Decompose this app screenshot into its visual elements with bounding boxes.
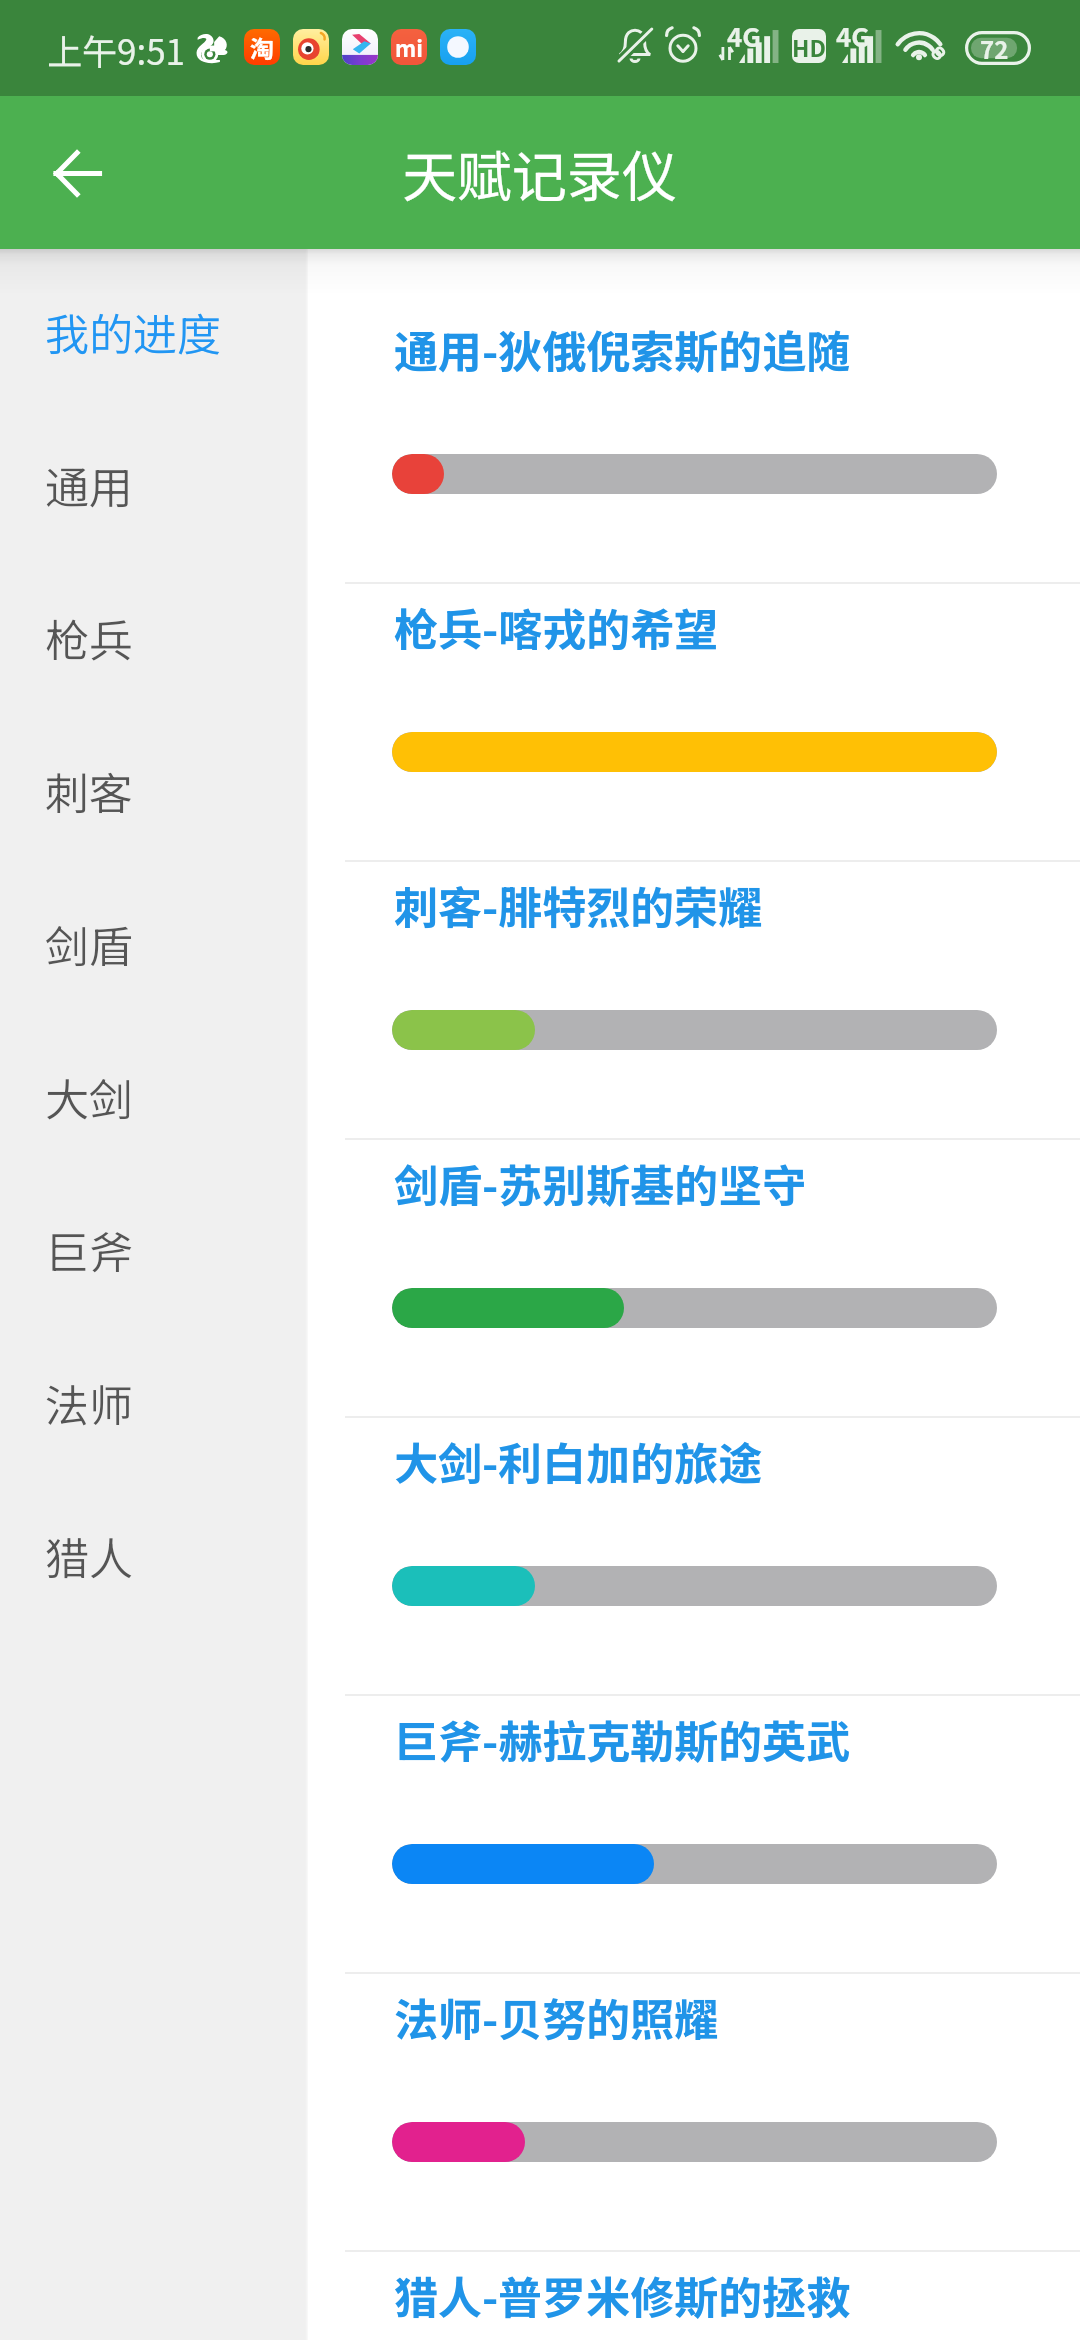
button[interactable]: 猎人: [0, 1479, 308, 1632]
staticText: 巨斧: [45, 1218, 133, 1282]
staticText: 枪兵: [45, 606, 133, 670]
staticText: 刺客-腓特烈的荣耀: [394, 873, 763, 937]
button[interactable]: 巨斧-赫拉克勒斯的英武: [308, 1694, 1080, 1972]
staticText: 法师: [45, 1371, 133, 1435]
button[interactable]: 通用-狄俄倪索斯的追随: [308, 306, 1080, 582]
staticText: 上午9:51: [47, 24, 186, 75]
staticText: 猎人: [45, 1524, 133, 1588]
button[interactable]: 剑盾: [0, 867, 308, 1020]
staticText: 刺客: [45, 759, 133, 823]
button[interactable]: 大剑: [0, 1020, 308, 1173]
staticText: 通用-狄俄倪索斯的追随: [394, 317, 851, 381]
staticText: 4G: [836, 17, 870, 55]
staticText: 大剑: [45, 1065, 133, 1129]
staticText: 枪兵-喀戎的希望: [394, 595, 719, 659]
staticText: 通用: [45, 453, 133, 517]
staticText: 法师-贝努的照耀: [394, 1985, 719, 2049]
staticText: 我的进度: [45, 300, 221, 364]
staticText: 淘: [250, 30, 274, 65]
button[interactable]: 我的进度: [0, 255, 308, 408]
staticText: 剑盾-苏别斯基的坚守: [394, 1151, 807, 1215]
button[interactable]: 法师: [0, 1326, 308, 1479]
staticText: 天赋记录仪: [402, 133, 678, 213]
button[interactable]: 剑盾-苏别斯基的坚守: [308, 1138, 1080, 1416]
staticText: 巨斧-赫拉克勒斯的英武: [394, 1707, 851, 1771]
staticText: 72: [980, 31, 1009, 65]
staticText: HD: [792, 30, 826, 63]
button[interactable]: 枪兵-喀戎的希望: [308, 582, 1080, 860]
staticText: 剑盾: [45, 912, 133, 976]
staticText: 大剑-利白加的旅途: [394, 1429, 763, 1493]
button[interactable]: 大剑-利白加的旅途: [308, 1416, 1080, 1694]
staticText: mi: [395, 31, 423, 63]
button[interactable]: 枪兵: [0, 561, 308, 714]
button[interactable]: 刺客: [0, 714, 308, 867]
button[interactable]: Back: [33, 129, 121, 217]
button[interactable]: 通用: [0, 408, 308, 561]
button[interactable]: 巨斧: [0, 1173, 308, 1326]
button[interactable]: 刺客-腓特烈的荣耀: [308, 860, 1080, 1138]
button[interactable]: 法师-贝努的照耀: [308, 1972, 1080, 2250]
staticText: 4G: [727, 17, 761, 55]
staticText: 猎人-普罗米修斯的拯救: [394, 2263, 851, 2327]
button[interactable]: 猎人-普罗米修斯的拯救: [308, 2250, 1080, 2340]
